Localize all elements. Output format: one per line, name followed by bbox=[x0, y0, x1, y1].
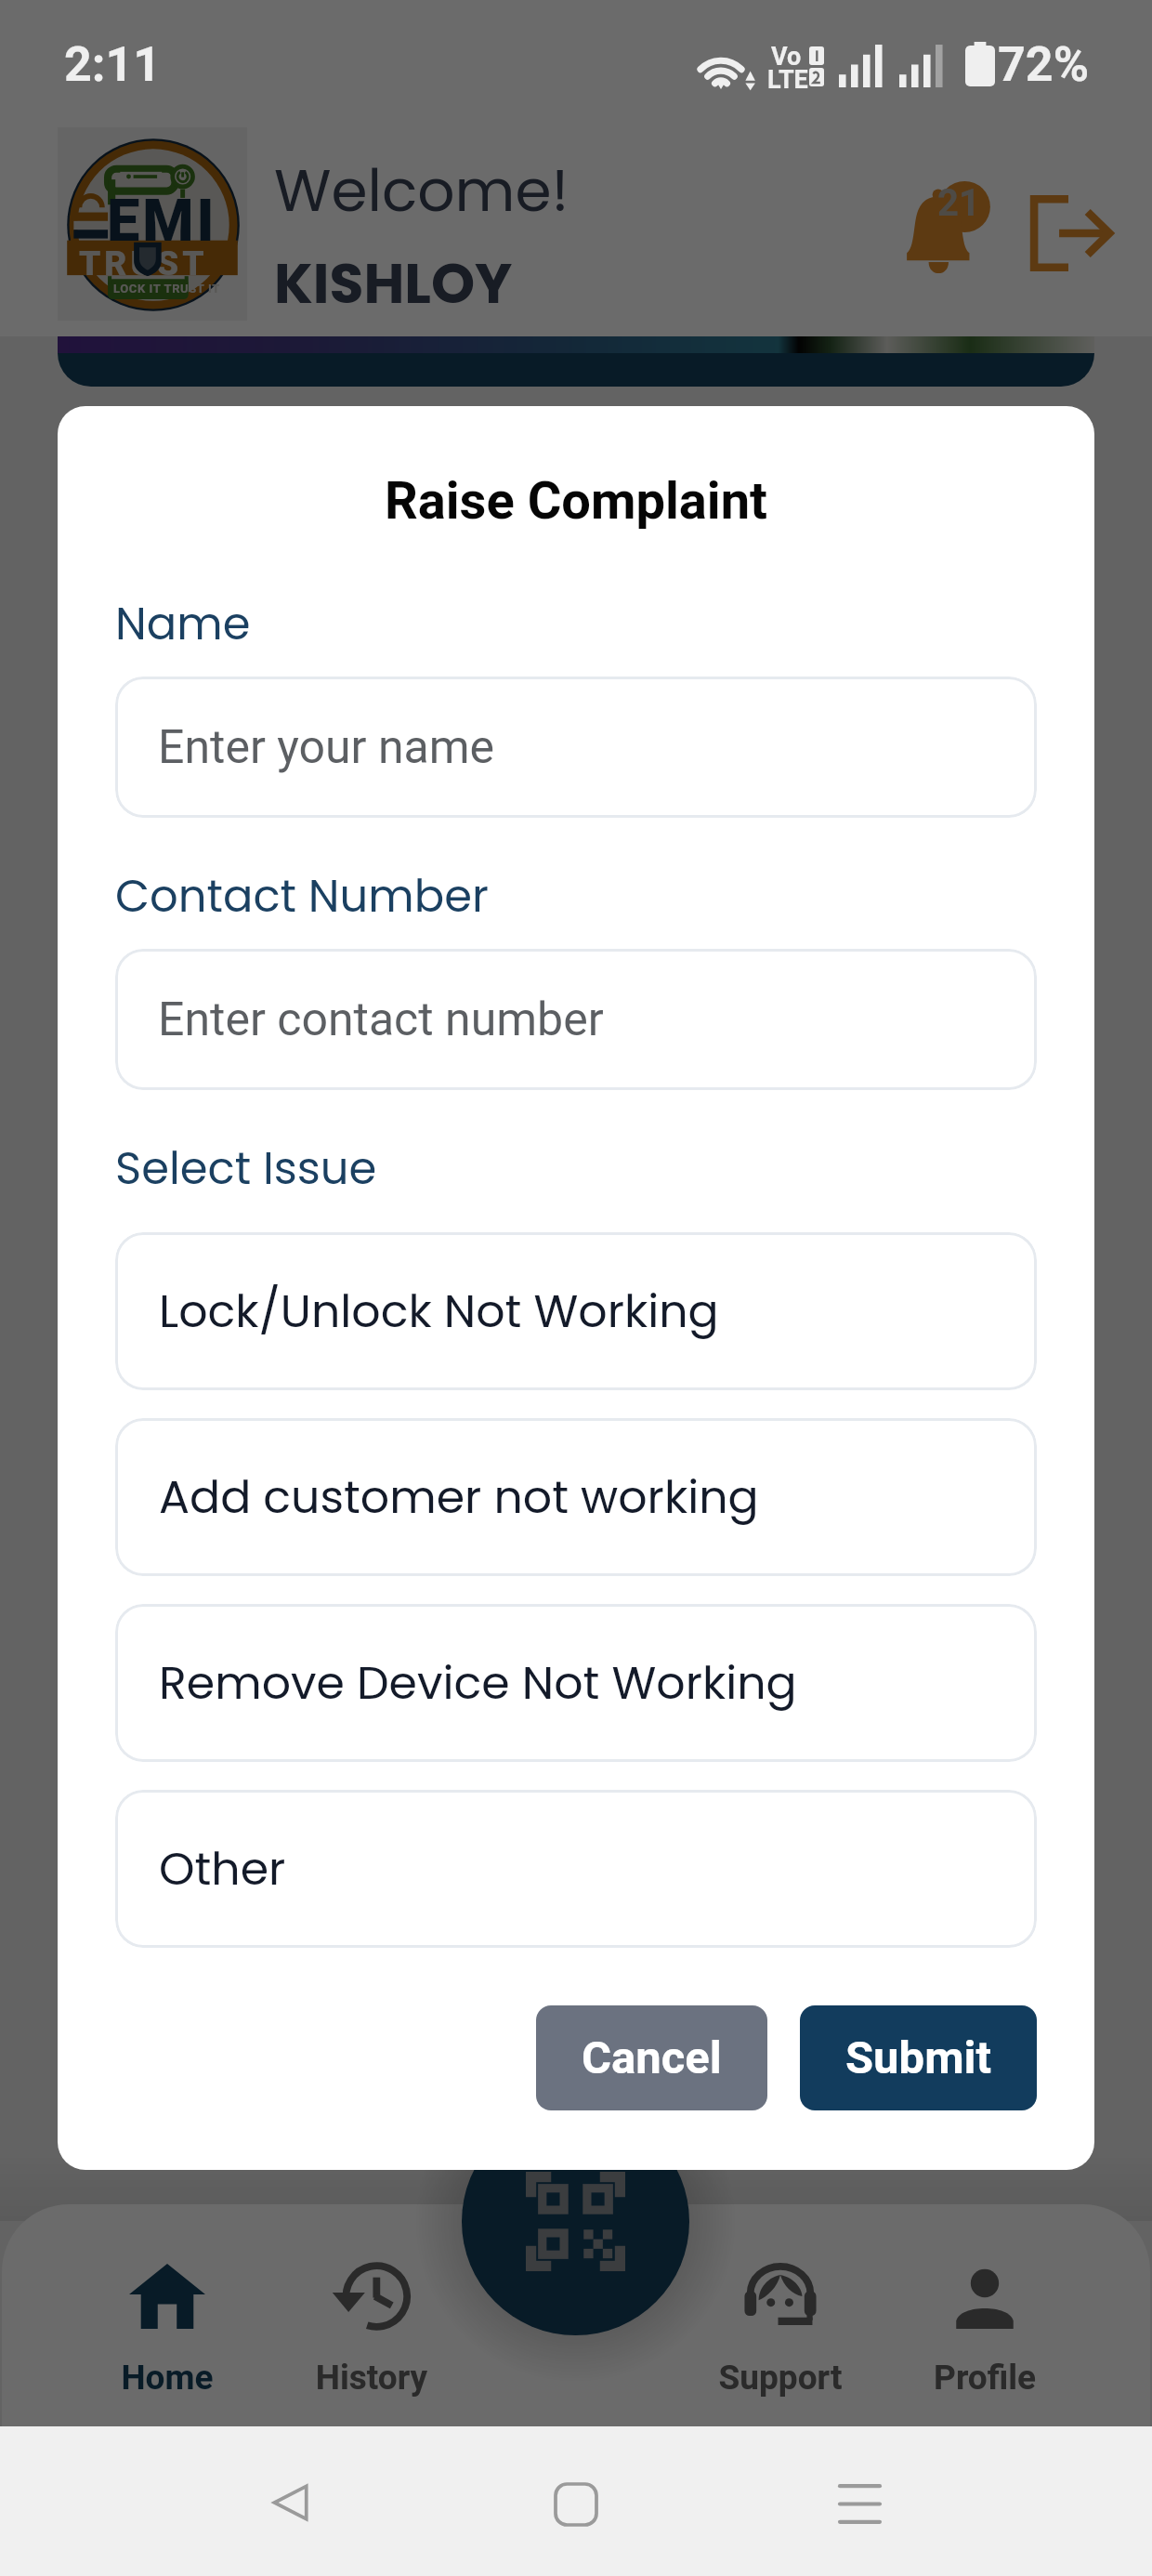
staticText: Select Issue bbox=[115, 1137, 377, 1200]
staticText: Contact Number bbox=[115, 865, 489, 927]
staticText: Remove Device Not Working bbox=[159, 1651, 797, 1715]
staticText: KISHLOY bbox=[274, 244, 513, 322]
button[interactable]: Lock/Unlock Not Working bbox=[115, 1232, 1037, 1390]
button[interactable]: Notifications bbox=[901, 175, 996, 275]
staticText: 72% bbox=[998, 36, 1090, 93]
staticText: Home bbox=[65, 2358, 269, 2398]
button[interactable]: History bbox=[269, 2240, 474, 2416]
button[interactable]: Home bbox=[556, 2484, 596, 2525]
staticText: Profile bbox=[883, 2358, 1087, 2398]
staticText: Other bbox=[159, 1837, 286, 1901]
staticText: Cancel bbox=[582, 2031, 722, 2084]
staticText: Raise Complaint bbox=[58, 470, 1094, 532]
staticText: Vo bbox=[771, 42, 802, 72]
button[interactable]: Enter your name bbox=[115, 677, 1037, 818]
staticText: Name bbox=[115, 593, 251, 655]
button[interactable]: Enter contact number bbox=[115, 949, 1037, 1090]
staticText: Lock/Unlock Not Working bbox=[159, 1280, 719, 1344]
button[interactable]: Scan QR code bbox=[462, 2108, 689, 2335]
staticText: Welcome! bbox=[274, 150, 569, 231]
staticText: EMI bbox=[107, 187, 217, 256]
staticText: Enter your name bbox=[158, 720, 495, 775]
staticText: History bbox=[269, 2358, 474, 2398]
staticText: Support bbox=[678, 2358, 883, 2398]
staticText: Enter contact number bbox=[158, 992, 604, 1047]
staticText: 2:11 bbox=[64, 36, 162, 93]
staticText: Submit bbox=[845, 2031, 992, 2084]
button[interactable]: Back bbox=[270, 2483, 311, 2522]
button[interactable]: Cancel bbox=[536, 2005, 767, 2110]
button[interactable]: Home bbox=[65, 2240, 269, 2416]
button[interactable]: Other bbox=[115, 1790, 1037, 1948]
button[interactable]: Recent apps bbox=[840, 2484, 880, 2524]
button[interactable]: Logout bbox=[1027, 195, 1110, 271]
button[interactable]: Submit bbox=[800, 2005, 1037, 2110]
staticText: TRUST bbox=[79, 243, 208, 283]
button[interactable]: Profile bbox=[883, 2240, 1087, 2416]
button[interactable]: Remove Device Not Working bbox=[115, 1604, 1037, 1762]
button[interactable]: Support bbox=[678, 2240, 883, 2416]
staticText: LOCK IT TRUST IT bbox=[113, 282, 220, 296]
button[interactable]: Add customer not working bbox=[115, 1418, 1037, 1576]
staticText: LTE bbox=[767, 65, 808, 95]
staticText: Add customer not working bbox=[159, 1465, 759, 1530]
staticText: 21 bbox=[937, 181, 980, 225]
